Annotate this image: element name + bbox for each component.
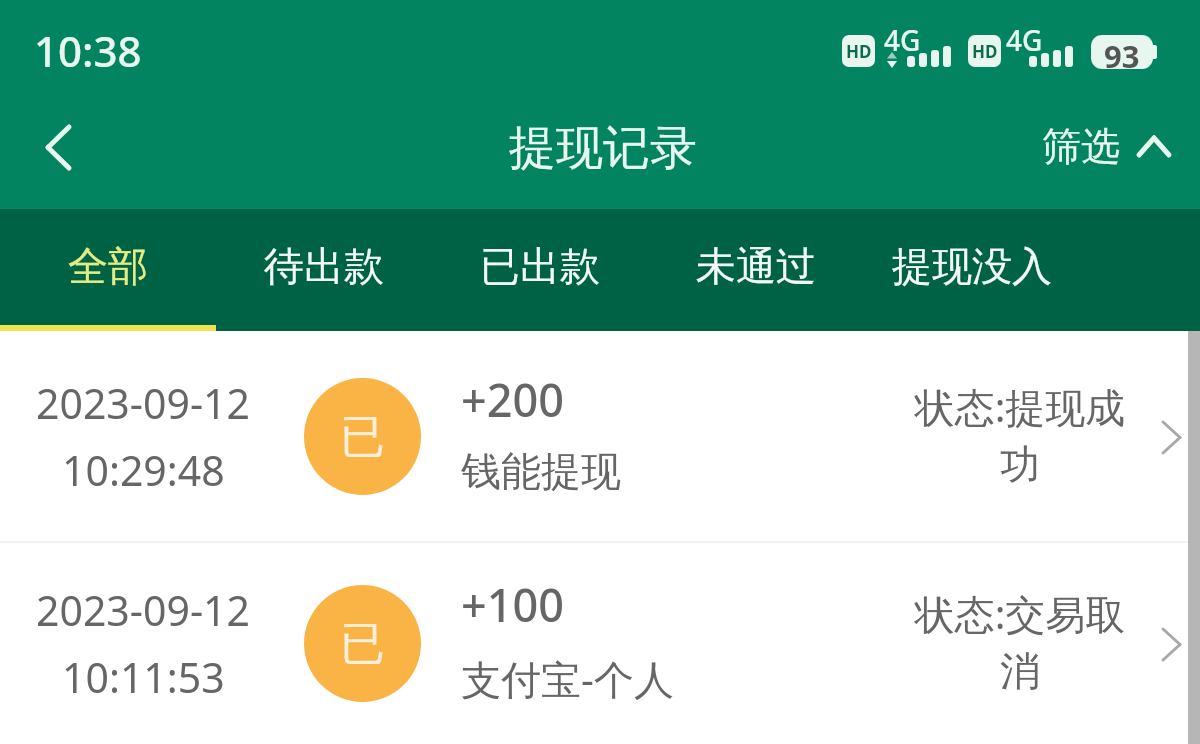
staticText: +100	[461, 574, 564, 635]
staticText: 钱能提现	[461, 446, 621, 496]
button[interactable]: 已出款	[432, 209, 648, 331]
staticText: 93	[1104, 35, 1140, 69]
button[interactable]: 待出款	[216, 209, 432, 331]
button[interactable]: 筛选	[1042, 122, 1171, 171]
staticText: 提现记录	[509, 119, 697, 178]
staticText: 2023-09-12	[36, 582, 251, 638]
button[interactable]: 提现没入	[864, 209, 1080, 331]
staticText: 筛选	[1042, 122, 1120, 171]
staticText: 已	[340, 616, 385, 673]
staticText: +200	[461, 369, 564, 430]
staticText: 已	[340, 409, 385, 466]
staticText: 提现没入	[892, 241, 1052, 291]
staticText: 已出款	[480, 241, 600, 291]
staticText: 未通过	[696, 241, 816, 291]
staticText: 2023-09-12	[36, 375, 251, 431]
staticText: 10:11:53	[62, 649, 225, 705]
staticText: 全部	[68, 241, 148, 291]
button[interactable]: 全部	[0, 209, 216, 331]
button[interactable]: 2023-09-12	[0, 331, 1200, 541]
staticText: HD	[846, 40, 872, 63]
staticText: 4G	[1006, 21, 1043, 59]
button[interactable]: 未通过	[648, 209, 864, 331]
button[interactable]: 2023-09-12	[0, 543, 1200, 744]
staticText: 4G	[884, 21, 921, 59]
staticText: 10:38	[34, 22, 142, 79]
staticText: 支付宝-个人	[461, 651, 674, 706]
staticText: HD	[972, 40, 998, 63]
button[interactable]: Back	[8, 109, 108, 209]
staticText: 状态:提现成 功	[910, 379, 1130, 490]
staticText: 待出款	[264, 241, 384, 291]
staticText: 10:29:48	[62, 442, 225, 498]
staticText: 状态:交易取 消	[910, 586, 1130, 697]
